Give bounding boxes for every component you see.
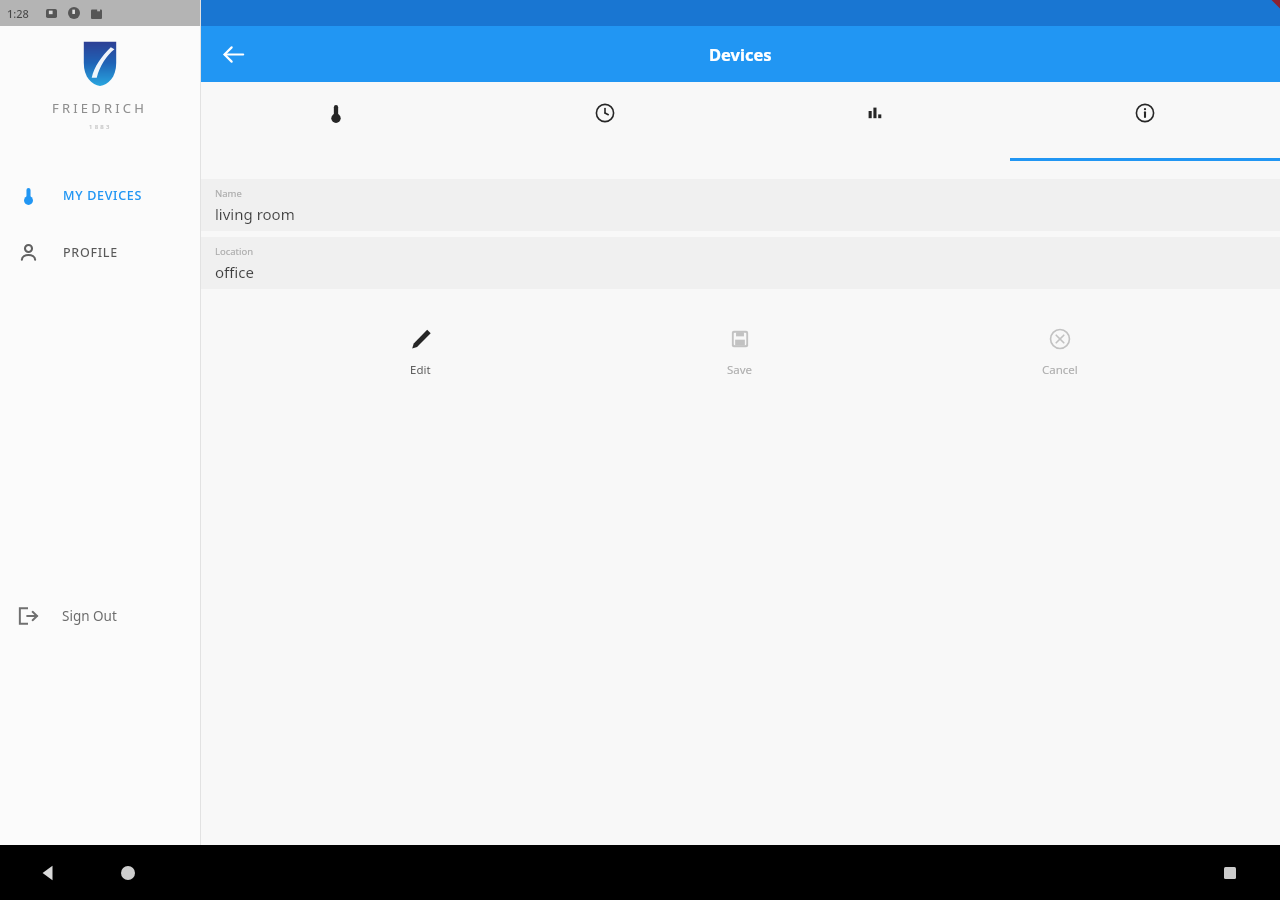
staticText: Save [727,362,753,378]
button[interactable]: Back [28,853,68,893]
button[interactable]: Tab [470,82,740,161]
button[interactable]: Location [201,237,1280,289]
staticText: PROFILE [63,244,118,261]
button[interactable]: Tab [740,82,1010,161]
button[interactable]: Cancel [900,323,1220,383]
button[interactable]: Tab [201,82,470,161]
staticText: MY DEVICES [63,187,143,204]
staticText: Devices [709,43,772,65]
staticText: 1883 [89,123,112,131]
button[interactable]: Name [201,179,1280,231]
button[interactable]: Sign Out [0,593,200,639]
button[interactable]: PROFILE [0,232,200,272]
button[interactable]: Recent apps [1210,853,1250,893]
staticText: Location [215,245,254,258]
staticText: 1:28 [7,6,29,21]
staticText: FRIEDRICH [52,99,148,117]
button[interactable]: Save [580,323,900,383]
staticText: Edit [410,362,431,378]
staticText: office [215,262,254,282]
button[interactable]: MY DEVICES [0,175,200,215]
staticText: Cancel [1042,362,1078,378]
staticText: Sign Out [62,607,117,625]
staticText: Name [215,187,242,200]
staticText: living room [215,204,295,224]
button[interactable]: Back [211,32,255,76]
button[interactable]: Info tab [1010,82,1280,161]
button[interactable]: Edit [261,323,580,383]
button[interactable]: Home [108,853,148,893]
